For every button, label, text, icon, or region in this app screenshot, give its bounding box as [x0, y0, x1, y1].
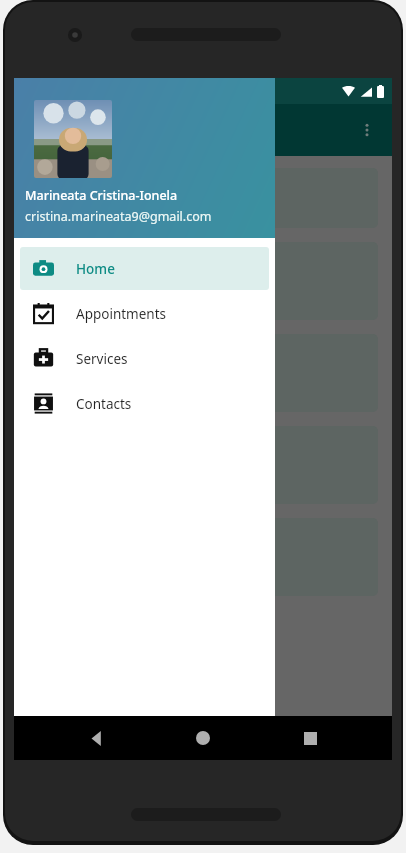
button[interactable]: Back [73, 716, 121, 760]
button[interactable]: More options [346, 109, 388, 151]
button[interactable]: Tel: 060 77762 [28, 426, 378, 504]
button[interactable]: Recent apps [286, 716, 334, 760]
staticText: Marineata Cristina-Ionela [25, 187, 178, 204]
staticText: Appointments [76, 305, 167, 323]
staticText: Stefan cel Mare 10 [42, 289, 172, 309]
button[interactable]: Marineata Cristina-Ionela [14, 78, 275, 238]
staticText: Dacia 20 [42, 381, 102, 401]
staticText: Home [76, 260, 115, 278]
button[interactable]: Tel: 069 123980 [28, 242, 378, 320]
button[interactable]: Ion Creanga 25 [28, 168, 378, 228]
staticText: Contacts [76, 395, 132, 413]
button[interactable]: Home [20, 247, 269, 290]
staticText: Services [76, 350, 128, 368]
button[interactable]: Home [179, 716, 227, 760]
staticText: Tel: 079 445308 [42, 345, 151, 365]
button[interactable]: Appointments [20, 292, 269, 335]
button[interactable]: Services [20, 337, 269, 380]
button[interactable]: Tel: 079 445308 [28, 334, 378, 412]
button[interactable]: Tel: 022 421954 [28, 518, 378, 596]
staticText: Tel: 069 123980 [42, 253, 151, 273]
staticText: cristina.marineata9@gmail.com [25, 208, 212, 225]
button[interactable]: Contacts [20, 382, 269, 425]
staticText: Ion Creanga 25 [42, 188, 150, 208]
